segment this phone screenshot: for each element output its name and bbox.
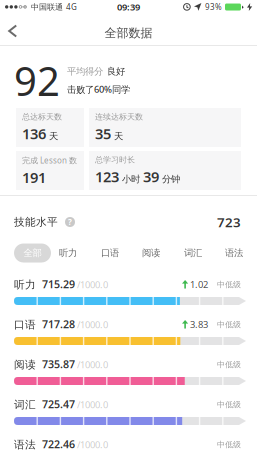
staticText: 分钟 <box>162 173 180 185</box>
button[interactable]: 语法 <box>224 247 244 259</box>
staticText: 语法 <box>14 438 36 451</box>
staticText: ? <box>68 217 72 227</box>
staticText: 中低级 <box>217 280 241 289</box>
staticText: 阅读 <box>14 358 36 371</box>
staticText: 连续达标天数 <box>95 112 143 122</box>
staticText: 中国联通 <box>31 2 63 12</box>
staticText: 4G <box>66 2 77 12</box>
staticText: 平均得分 <box>67 66 103 77</box>
staticText: 良好 <box>107 66 125 77</box>
staticText: 中低级 <box>217 400 241 409</box>
button[interactable]: 词汇 <box>183 247 203 259</box>
staticText: 93% <box>205 2 222 12</box>
staticText: 天 <box>49 130 58 142</box>
staticText: 口语 <box>14 318 36 331</box>
button[interactable]: 全部 <box>14 243 51 262</box>
staticText: 中低级 <box>217 440 241 449</box>
staticText: 725.47 <box>42 397 75 411</box>
staticText: 中低级 <box>217 320 241 329</box>
staticText: /1000.0 <box>77 278 108 291</box>
staticText: 136 <box>22 124 46 143</box>
staticText: 听力 <box>59 247 77 259</box>
button[interactable]: 阅读 <box>141 247 161 259</box>
staticText: 191 <box>22 168 46 187</box>
staticText: 中低级 <box>217 360 241 369</box>
staticText: 全部 <box>23 247 41 259</box>
staticText: 723 <box>217 213 241 231</box>
button[interactable]: Back <box>0 15 18 43</box>
staticText: 35 <box>95 124 111 143</box>
staticText: /1000.0 <box>77 318 108 331</box>
staticText: 击败了60%同学 <box>67 83 130 95</box>
staticText: 技能水平 <box>14 215 58 228</box>
staticText: /1000.0 <box>77 438 108 451</box>
staticText: 123 <box>95 167 119 186</box>
staticText: 722.46 <box>42 437 75 451</box>
staticText: 完成 Lesson 数 <box>22 155 77 166</box>
staticText: 口语 <box>101 247 119 259</box>
staticText: 阅读 <box>142 247 160 259</box>
button[interactable]: 口语 <box>100 247 120 259</box>
staticText: 09:39 <box>117 1 140 13</box>
staticText: 总达标天数 <box>22 112 62 122</box>
staticText: 天 <box>114 130 123 142</box>
staticText: 715.29 <box>42 277 75 291</box>
staticText: 735.87 <box>42 357 75 371</box>
button[interactable]: 技能水平说明 <box>58 217 75 227</box>
staticText: 3.83 <box>190 318 208 331</box>
staticText: 1.02 <box>190 278 208 291</box>
staticText: 总学习时长 <box>95 155 135 165</box>
staticText: 小时 <box>122 173 140 185</box>
staticText: /1000.0 <box>77 358 108 371</box>
staticText: 全部数据 <box>104 26 152 40</box>
button[interactable]: 听力 <box>58 247 78 259</box>
staticText: 听力 <box>14 278 36 291</box>
staticText: /1000.0 <box>77 398 108 411</box>
staticText: 词汇 <box>184 247 202 259</box>
staticText: 语法 <box>225 247 243 259</box>
staticText: 92 <box>14 54 60 107</box>
staticText: 39 <box>143 167 159 186</box>
staticText: 717.28 <box>42 317 75 331</box>
staticText: 词汇 <box>14 398 36 411</box>
